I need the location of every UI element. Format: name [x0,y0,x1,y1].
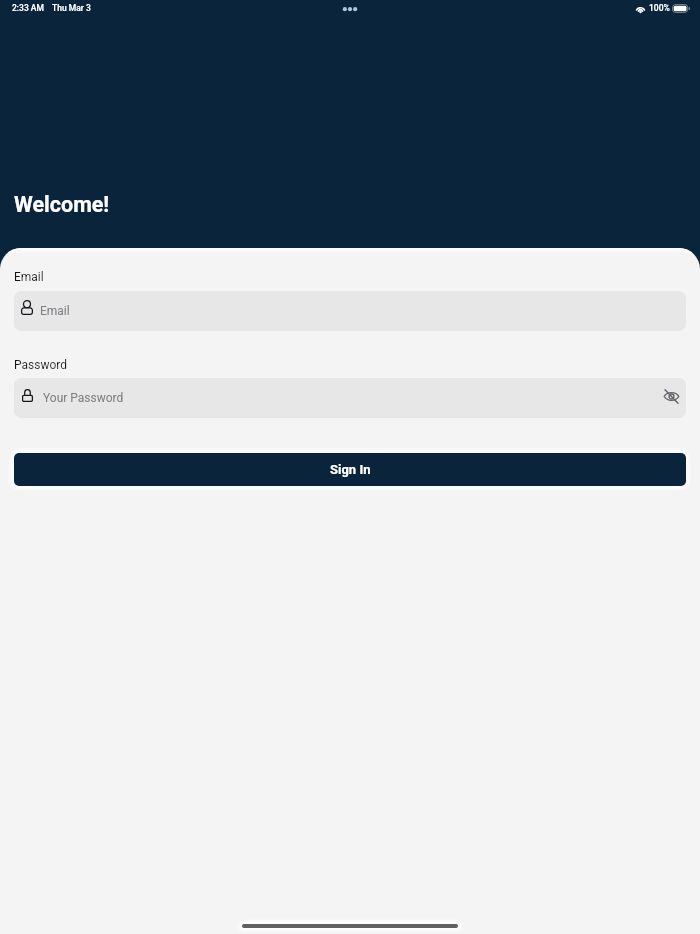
staticText: 100% [649,3,670,13]
staticText: Password [14,358,68,372]
staticText: Sign In [330,462,371,477]
staticText: Email [40,304,70,318]
button[interactable]: Show password [661,386,681,406]
button[interactable]: Email [14,291,686,331]
staticText: Your Password [43,391,124,405]
button[interactable]: Your Password [14,378,686,418]
staticText: Thu Mar 3 [52,3,91,13]
staticText: 2:33 AM [12,3,44,13]
button[interactable]: Sign In [14,453,686,486]
staticText: Welcome! [14,192,110,217]
staticText: Email [14,270,44,284]
